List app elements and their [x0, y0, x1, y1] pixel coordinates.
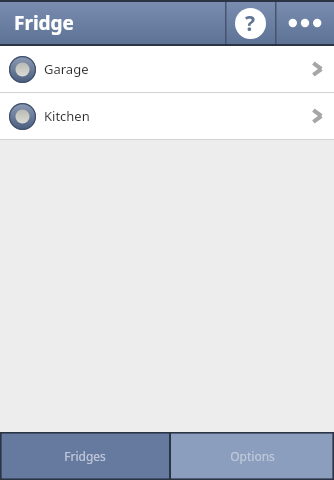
button[interactable]: Garage	[0, 46, 334, 92]
staticText: Fridge	[14, 10, 74, 36]
staticText: Options	[230, 448, 275, 464]
button[interactable]: More options	[276, 0, 334, 46]
staticText: ?	[245, 9, 256, 38]
button[interactable]: Fridges	[0, 432, 170, 480]
staticText: Fridges	[64, 448, 106, 464]
staticText: Garage	[44, 60, 300, 78]
staticText: Kitchen	[44, 107, 300, 125]
button[interactable]: Options	[170, 432, 334, 480]
button[interactable]: Kitchen	[0, 93, 334, 139]
button[interactable]: Help	[226, 0, 275, 46]
